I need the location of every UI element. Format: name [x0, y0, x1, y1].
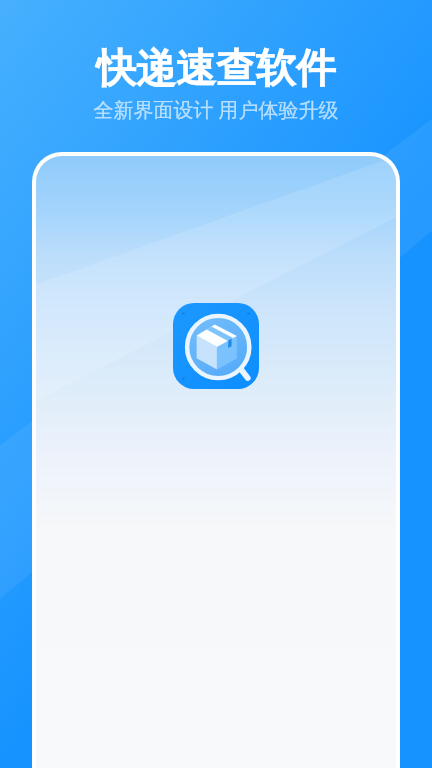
staticText: 全新界面设计 用户体验升级 [93, 96, 339, 123]
staticText: 快递速查软件 [96, 43, 336, 93]
button[interactable]: 快递速查 [173, 303, 259, 389]
